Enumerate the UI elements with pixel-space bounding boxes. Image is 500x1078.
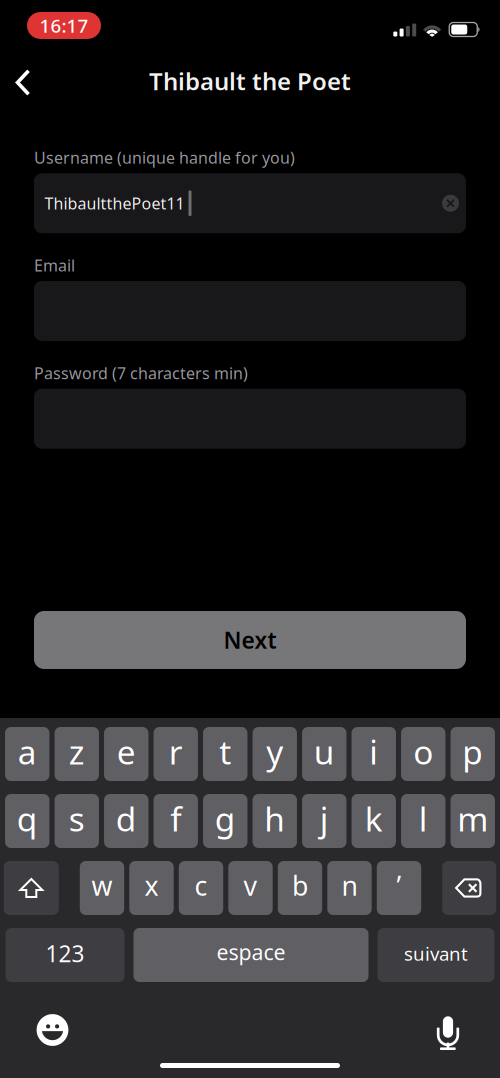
staticText: j <box>320 796 329 841</box>
button[interactable]: h <box>253 794 297 848</box>
button[interactable]: u <box>302 727 346 781</box>
button[interactable]: Clear text <box>436 189 464 217</box>
staticText: x <box>144 868 158 903</box>
staticText: v <box>243 868 257 903</box>
button[interactable]: d <box>104 794 148 848</box>
button[interactable]: f <box>154 794 198 848</box>
staticText: m <box>457 796 488 841</box>
staticText: Username (unique handle for you) <box>34 147 295 168</box>
staticText: u <box>314 729 335 774</box>
staticText: y <box>266 729 283 774</box>
staticText: q <box>17 796 38 841</box>
staticText: i <box>369 729 378 774</box>
button[interactable]: x <box>129 861 174 915</box>
staticText: espace <box>216 938 285 966</box>
staticText: f <box>170 796 181 841</box>
staticText: c <box>194 868 207 903</box>
button[interactable]: w <box>80 861 124 915</box>
button[interactable]: t <box>203 727 247 781</box>
button[interactable]: v <box>228 861 273 915</box>
button[interactable]: m <box>451 794 495 848</box>
button[interactable]: 123 <box>5 928 124 982</box>
button[interactable]: espace <box>133 928 368 982</box>
staticText: z <box>69 729 85 774</box>
button[interactable]: e <box>104 727 148 781</box>
staticText: d <box>116 796 137 841</box>
button[interactable]: j <box>302 794 346 848</box>
button[interactable]: g <box>203 794 247 848</box>
staticText: r <box>169 729 183 774</box>
button[interactable]: Back <box>0 53 46 105</box>
button[interactable]: i <box>352 727 396 781</box>
staticText: Email <box>34 255 75 276</box>
staticText: ’ <box>396 868 401 903</box>
button[interactable]: p <box>451 727 495 781</box>
staticText: Thibault the Poet <box>149 65 351 97</box>
button[interactable]: o <box>401 727 445 781</box>
button[interactable]: Backspace <box>442 861 496 915</box>
staticText: 16:17 <box>39 13 88 38</box>
button[interactable]: Emoji keyboard <box>30 1013 74 1047</box>
staticText: ThibaultthePoet11 <box>44 193 184 214</box>
staticText: Password (7 characters min) <box>34 362 248 384</box>
staticText: suivant <box>404 941 468 966</box>
button[interactable]: c <box>179 861 223 915</box>
staticText: h <box>264 796 285 841</box>
staticText: b <box>292 868 308 903</box>
staticText: Next <box>223 625 276 655</box>
button[interactable]: s <box>55 794 99 848</box>
staticText: n <box>341 868 357 903</box>
button[interactable]: k <box>352 794 396 848</box>
button[interactable]: Shift <box>4 861 59 915</box>
button[interactable]: Dictation <box>426 1013 470 1047</box>
staticText: g <box>215 796 236 841</box>
button[interactable]: q <box>5 794 49 848</box>
staticText: w <box>91 868 112 903</box>
staticText: a <box>18 729 37 774</box>
button[interactable]: y <box>253 727 297 781</box>
staticText: s <box>69 796 85 841</box>
button[interactable]: r <box>154 727 198 781</box>
button[interactable]: ’ <box>377 861 421 915</box>
staticText: 123 <box>45 938 84 968</box>
staticText: o <box>413 729 433 774</box>
button[interactable]: a <box>5 727 49 781</box>
button[interactable]: b <box>278 861 322 915</box>
button[interactable]: n <box>327 861 372 915</box>
staticText: l <box>419 796 428 841</box>
button[interactable]: Next <box>34 611 466 669</box>
staticText: e <box>117 729 136 774</box>
button[interactable]: z <box>55 727 99 781</box>
staticText: t <box>219 729 231 774</box>
staticText: k <box>365 796 383 841</box>
button[interactable]: suivant <box>377 928 494 982</box>
staticText: p <box>462 729 483 774</box>
button[interactable]: l <box>401 794 445 848</box>
